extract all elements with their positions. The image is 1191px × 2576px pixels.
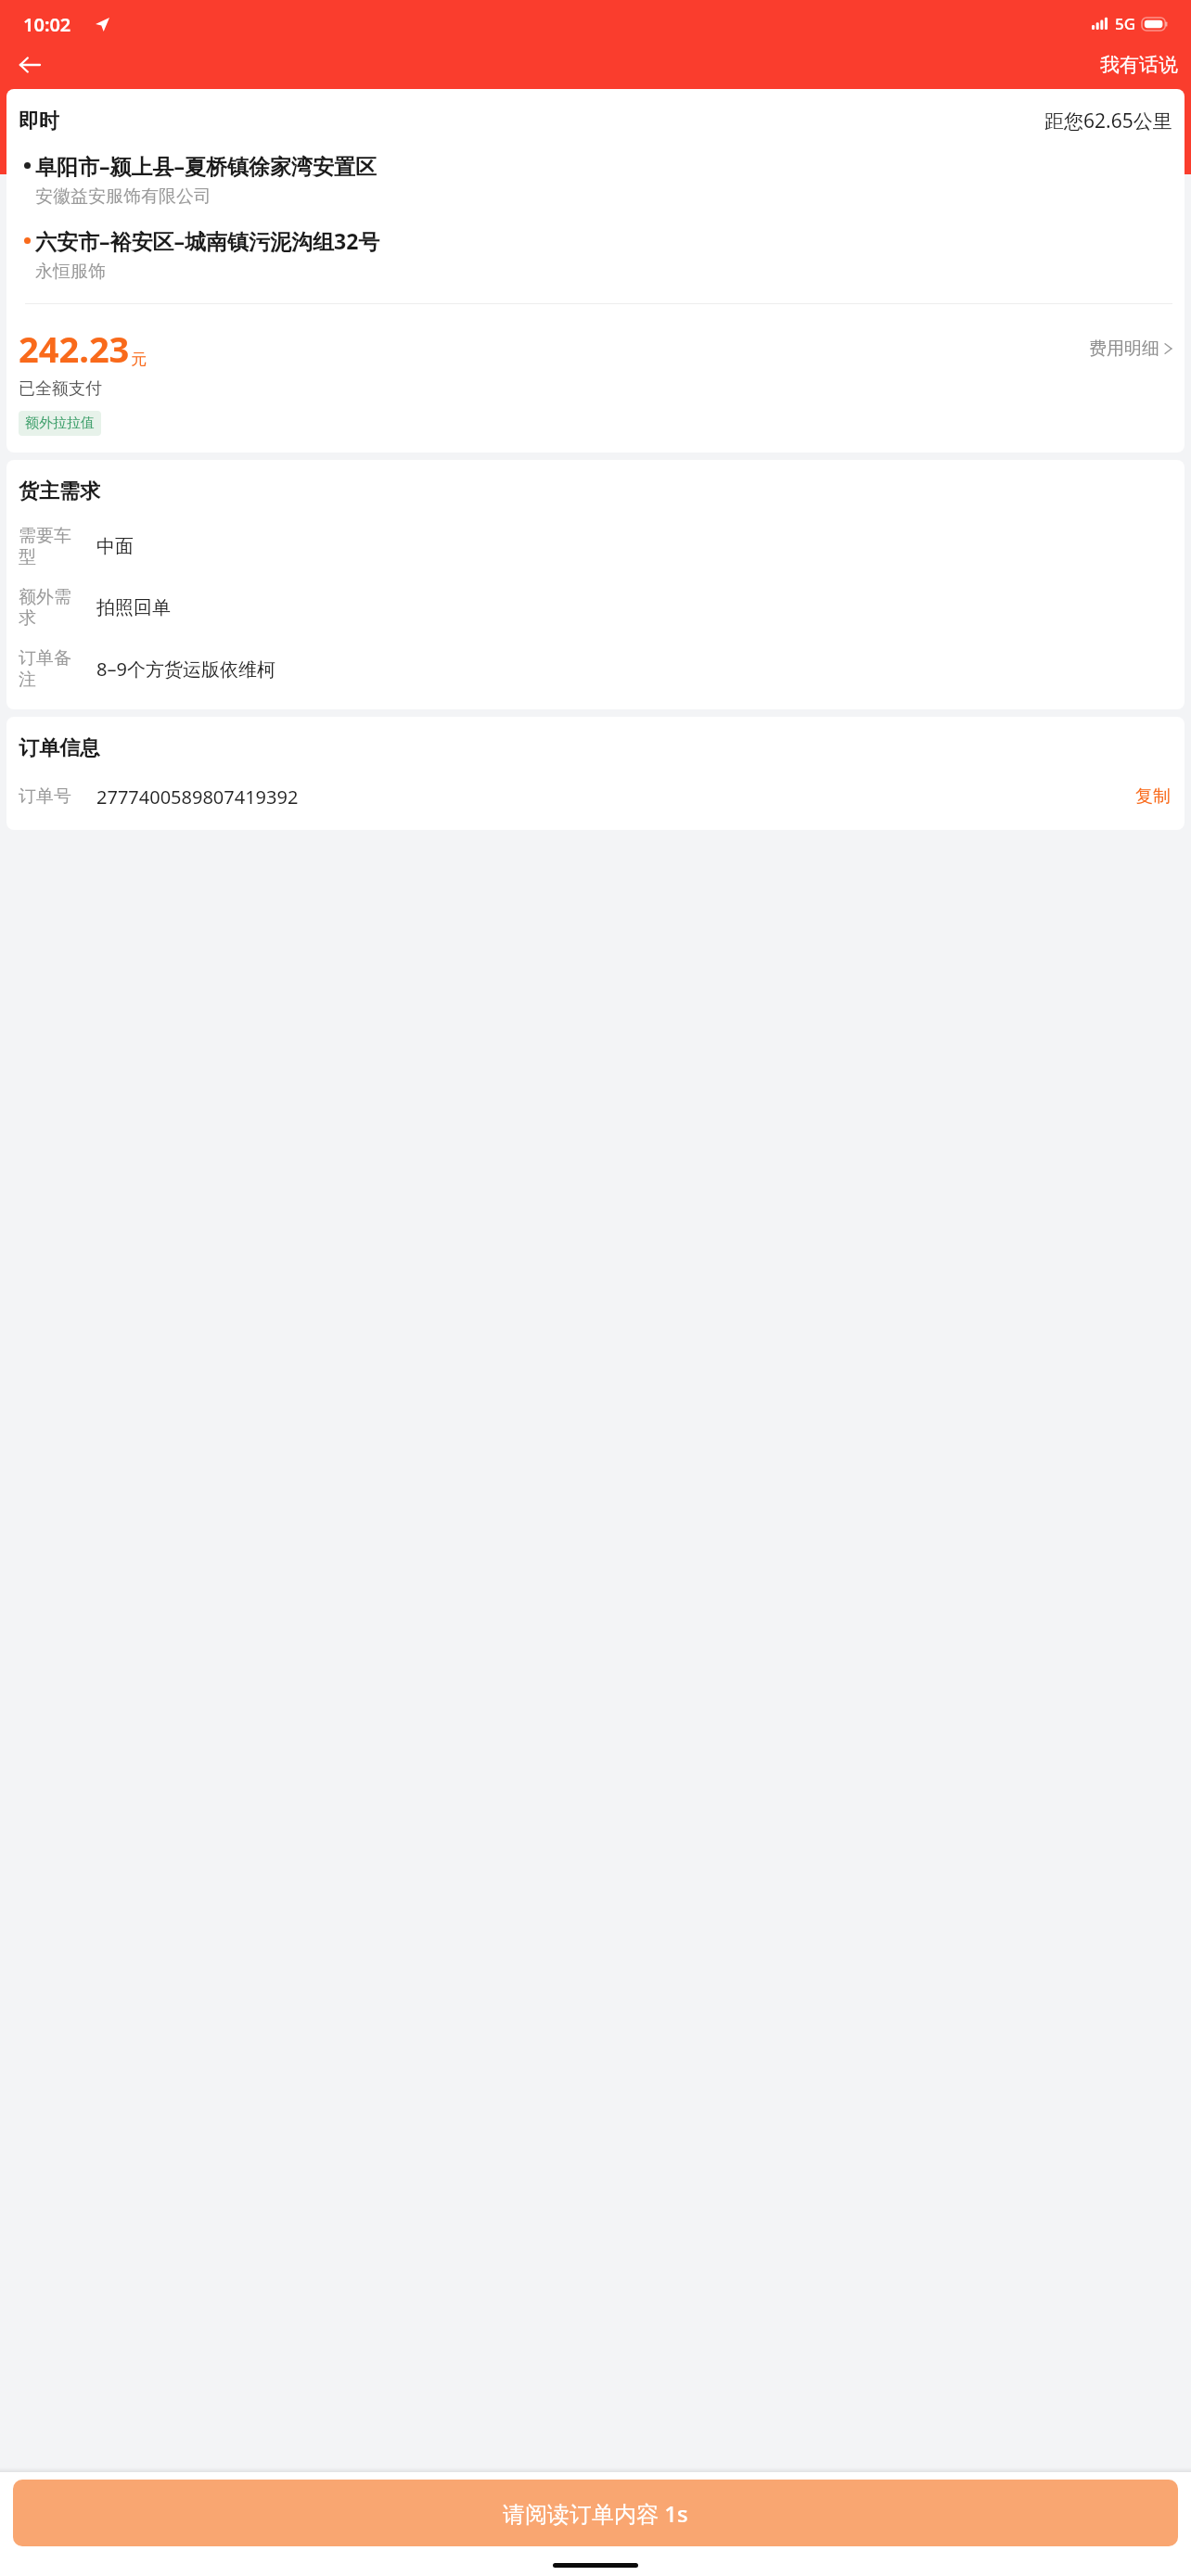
staticText: 六安市–裕安区–城南镇污泥沟组32号: [35, 226, 380, 255]
staticText: 额外拉拉值: [25, 414, 95, 432]
staticText: 2777400589807419392: [96, 784, 299, 810]
staticText: 我有话说: [1100, 53, 1178, 77]
staticText: 距您62.65公里: [1044, 108, 1172, 134]
button[interactable]: 复制: [1133, 782, 1172, 811]
staticText: 即时: [19, 108, 59, 134]
button[interactable]: 请阅读订单内容 1s: [13, 2480, 1178, 2546]
staticText: 订单备注: [19, 647, 81, 691]
staticText: 已全额支付: [19, 378, 102, 400]
staticText: 货主需求: [19, 478, 100, 504]
button[interactable]: 费用明细: [1089, 334, 1172, 363]
staticText: 订单信息: [19, 735, 100, 761]
staticText: 永恒服饰: [35, 261, 106, 283]
button[interactable]: 我有话说: [1087, 47, 1191, 83]
staticText: 拍照回单: [96, 596, 171, 619]
staticText: 复制: [1135, 785, 1171, 808]
staticText: 额外需求: [19, 586, 81, 630]
staticText: 安徽益安服饰有限公司: [35, 185, 211, 208]
staticText: 元: [131, 350, 147, 369]
staticText: 8–9个方货运版依维柯: [96, 657, 275, 682]
staticText: 242.23: [19, 325, 130, 373]
button[interactable]: Back: [6, 45, 54, 85]
staticText: 10:02: [23, 12, 71, 37]
staticText: 中面: [96, 535, 134, 558]
staticText: 订单号: [19, 785, 81, 808]
staticText: 费用明细: [1089, 338, 1159, 360]
staticText: 阜阳市–颍上县–夏桥镇徐家湾安置区: [35, 151, 377, 180]
staticText: 请阅读订单内容 1s: [503, 2498, 688, 2529]
staticText: 需要车型: [19, 525, 81, 568]
staticText: 5G: [1115, 13, 1136, 34]
